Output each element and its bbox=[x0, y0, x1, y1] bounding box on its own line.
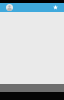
button[interactable]: Profile bbox=[0, 4, 13, 11]
button[interactable]: Favorite bbox=[53, 5, 64, 10]
